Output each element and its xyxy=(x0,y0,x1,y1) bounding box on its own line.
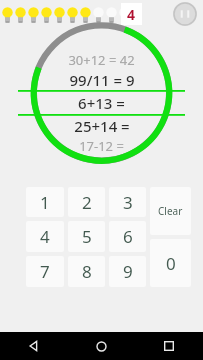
button[interactable]: 4 xyxy=(121,3,142,25)
staticText: 25+14 = xyxy=(74,116,130,136)
button[interactable]: Recents xyxy=(135,332,203,360)
staticText: 6 xyxy=(123,225,133,248)
button[interactable]: Pause xyxy=(173,2,197,26)
staticText: 9 xyxy=(123,260,133,283)
button[interactable]: 9 xyxy=(109,256,146,287)
staticText: Clear xyxy=(158,204,183,218)
button[interactable]: 3 xyxy=(109,187,146,217)
staticText: 0 xyxy=(166,252,176,275)
button[interactable]: 8 xyxy=(68,256,105,287)
staticText: 5 xyxy=(82,225,92,248)
staticText: 4 xyxy=(40,225,50,248)
button[interactable]: Clear xyxy=(150,187,191,235)
button[interactable]: 0 xyxy=(150,239,191,287)
staticText: 17-12 = xyxy=(79,137,124,155)
button[interactable]: 5 xyxy=(68,221,105,252)
staticText: 8 xyxy=(82,260,92,283)
staticText: 2 xyxy=(82,191,92,214)
button[interactable]: 1 xyxy=(26,187,64,217)
staticText: 7 xyxy=(40,260,50,283)
button[interactable]: 2 xyxy=(68,187,105,217)
button[interactable]: 4 xyxy=(26,221,64,252)
button[interactable]: 6 xyxy=(109,221,146,252)
staticText: 1 xyxy=(40,191,50,214)
button[interactable]: Back xyxy=(0,332,67,360)
staticText: 99/11 = 9 xyxy=(69,70,135,90)
staticText: 6+13 = xyxy=(78,93,125,113)
button[interactable]: 7 xyxy=(26,256,64,287)
staticText: 4 xyxy=(127,5,136,24)
button[interactable]: Home xyxy=(67,332,135,360)
staticText: 30+12 = 42 xyxy=(68,51,135,69)
staticText: 3 xyxy=(123,191,133,214)
